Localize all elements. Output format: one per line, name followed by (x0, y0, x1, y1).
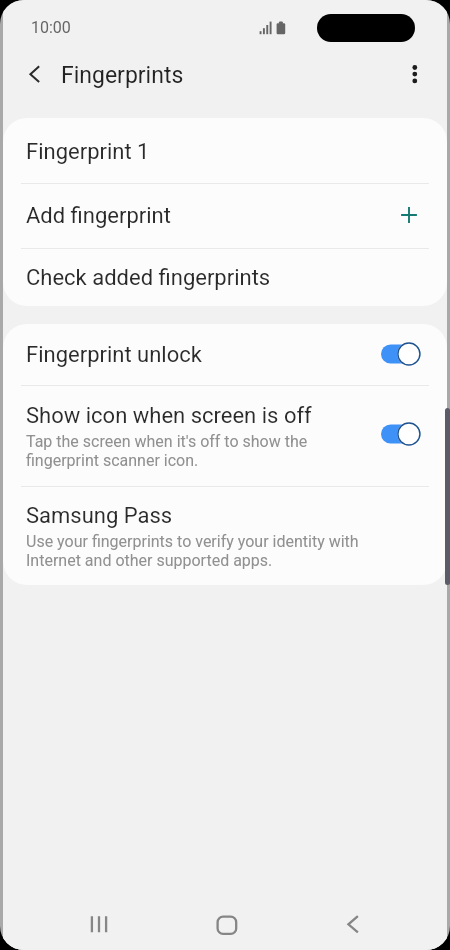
staticText: Fingerprint unlock (26, 342, 202, 368)
button[interactable]: Recent apps (77, 902, 121, 946)
button[interactable]: Check added fingerprints (3, 249, 447, 306)
staticText: Use your fingerprints to verify your ide… (26, 532, 359, 551)
button[interactable]: Toggle (381, 421, 423, 447)
staticText: Add fingerprint (26, 203, 171, 229)
button[interactable] (3, 386, 447, 486)
staticText: Check added fingerprints (26, 265, 271, 291)
staticText: fingerprint scanner icon. (26, 451, 199, 470)
staticText: Internet and other supported apps. (26, 551, 273, 570)
button[interactable]: Samsung Pass (3, 487, 447, 585)
staticText: Show icon when screen is off (26, 403, 312, 429)
staticText: Tap the screen when it's off to show the (26, 432, 308, 451)
button[interactable]: Add fingerprint (3, 184, 447, 248)
button[interactable]: Back (331, 902, 375, 946)
button[interactable]: More options (390, 52, 434, 96)
staticText: Fingerprint 1 (26, 139, 150, 165)
button[interactable]: Toggle (381, 341, 423, 367)
staticText: Samsung Pass (26, 503, 173, 529)
staticText: Fingerprints (61, 62, 184, 89)
button[interactable] (3, 324, 447, 385)
button[interactable]: Fingerprint 1 (3, 118, 447, 183)
button[interactable]: Navigate up (15, 52, 59, 96)
staticText: 10:00 (31, 18, 71, 37)
button[interactable]: Home (205, 903, 249, 947)
